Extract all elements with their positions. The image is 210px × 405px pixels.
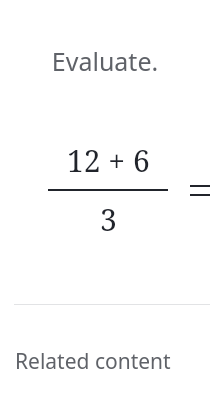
staticText: 12 + 6 — [67, 140, 150, 181]
staticText: Evaluate. — [14, 44, 196, 78]
staticText: Related content — [15, 347, 171, 376]
button[interactable]: Related content — [0, 343, 210, 384]
staticText: 3 — [100, 199, 117, 240]
other: equals — [190, 185, 210, 196]
